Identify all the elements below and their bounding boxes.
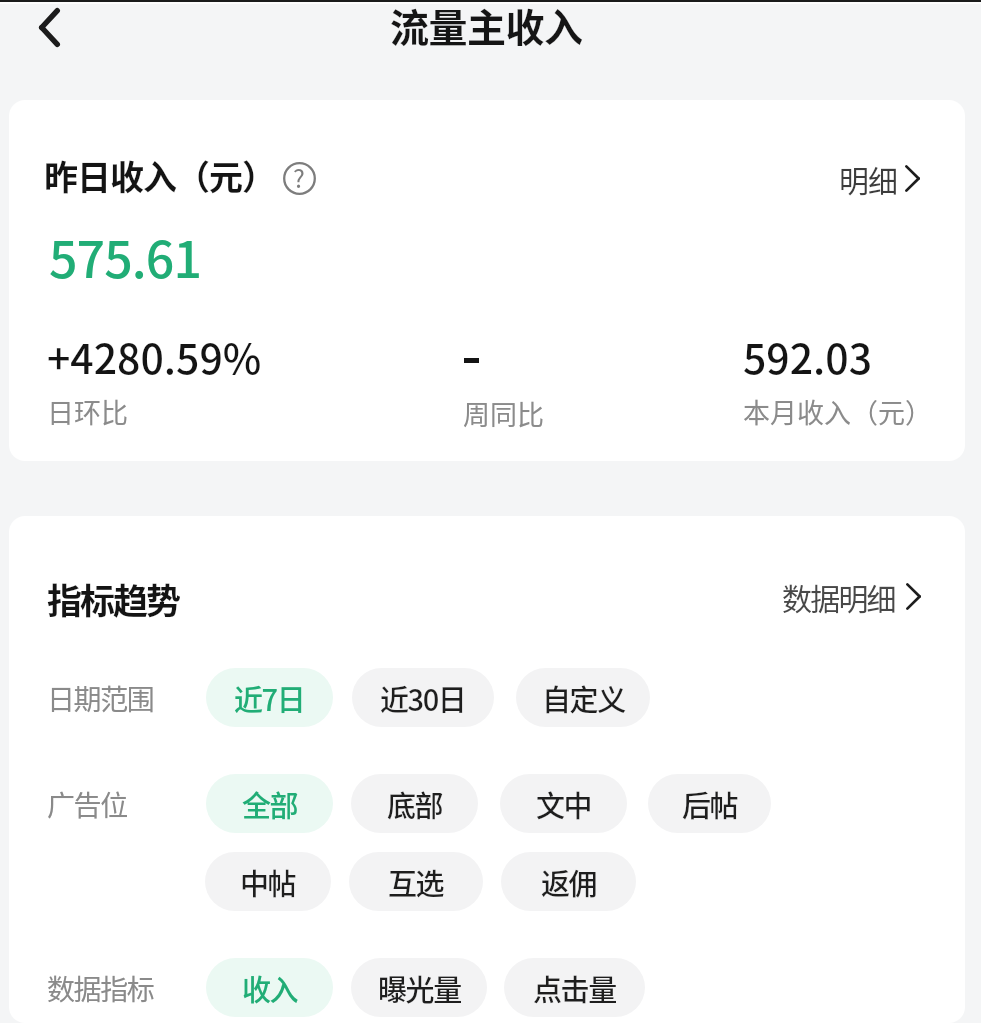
staticText: 周同比	[463, 394, 544, 433]
staticText: 文中	[536, 783, 592, 825]
button[interactable]: 近7日	[206, 668, 333, 727]
staticText: 明细	[839, 157, 897, 200]
staticText: 575.61	[49, 220, 201, 292]
staticText: ?	[293, 159, 305, 195]
button[interactable]: 数据明细	[782, 575, 921, 618]
staticText: 点击量	[533, 967, 616, 1009]
staticText: 本月收入（元）	[743, 392, 932, 431]
button[interactable]: 明细	[839, 157, 920, 200]
button[interactable]: 后帖	[648, 774, 771, 833]
button[interactable]: 返佣	[501, 852, 636, 911]
staticText: 广告位	[47, 784, 127, 825]
button[interactable]: 自定义	[516, 668, 650, 727]
button[interactable]: Back	[10, 0, 90, 54]
staticText: 数据指标	[47, 968, 154, 1009]
staticText: 近30日	[380, 677, 466, 719]
staticText: 日环比	[47, 392, 128, 431]
staticText: 日期范围	[47, 678, 154, 719]
button[interactable]: 全部	[206, 774, 333, 833]
staticText: 后帖	[682, 783, 738, 825]
button[interactable]: 底部	[351, 774, 478, 833]
staticText: 昨日收入（元）	[44, 151, 275, 200]
staticText: 流量主收入	[390, 0, 583, 53]
staticText: 返佣	[541, 861, 597, 903]
staticText: 互选	[388, 861, 444, 903]
button[interactable]: Help	[279, 158, 319, 198]
staticText: 曝光量	[378, 967, 461, 1009]
button[interactable]: 点击量	[504, 958, 645, 1017]
staticText: 自定义	[542, 677, 625, 719]
staticText: 592.03	[743, 326, 873, 385]
staticText: 全部	[242, 783, 298, 825]
staticText: 收入	[242, 967, 298, 1009]
button[interactable]: 近30日	[352, 668, 494, 727]
staticText: +4280.59%	[47, 326, 262, 385]
button[interactable]: 文中	[500, 774, 627, 833]
button[interactable]: 收入	[206, 958, 333, 1017]
staticText: 数据明细	[782, 575, 895, 618]
button[interactable]: 互选	[349, 852, 483, 911]
staticText: 指标趋势	[47, 573, 180, 624]
staticText: 中帖	[240, 861, 296, 903]
staticText: 近7日	[234, 677, 305, 719]
button[interactable]: 曝光量	[351, 958, 487, 1017]
button[interactable]: 中帖	[205, 852, 331, 911]
staticText: 底部	[387, 783, 443, 825]
